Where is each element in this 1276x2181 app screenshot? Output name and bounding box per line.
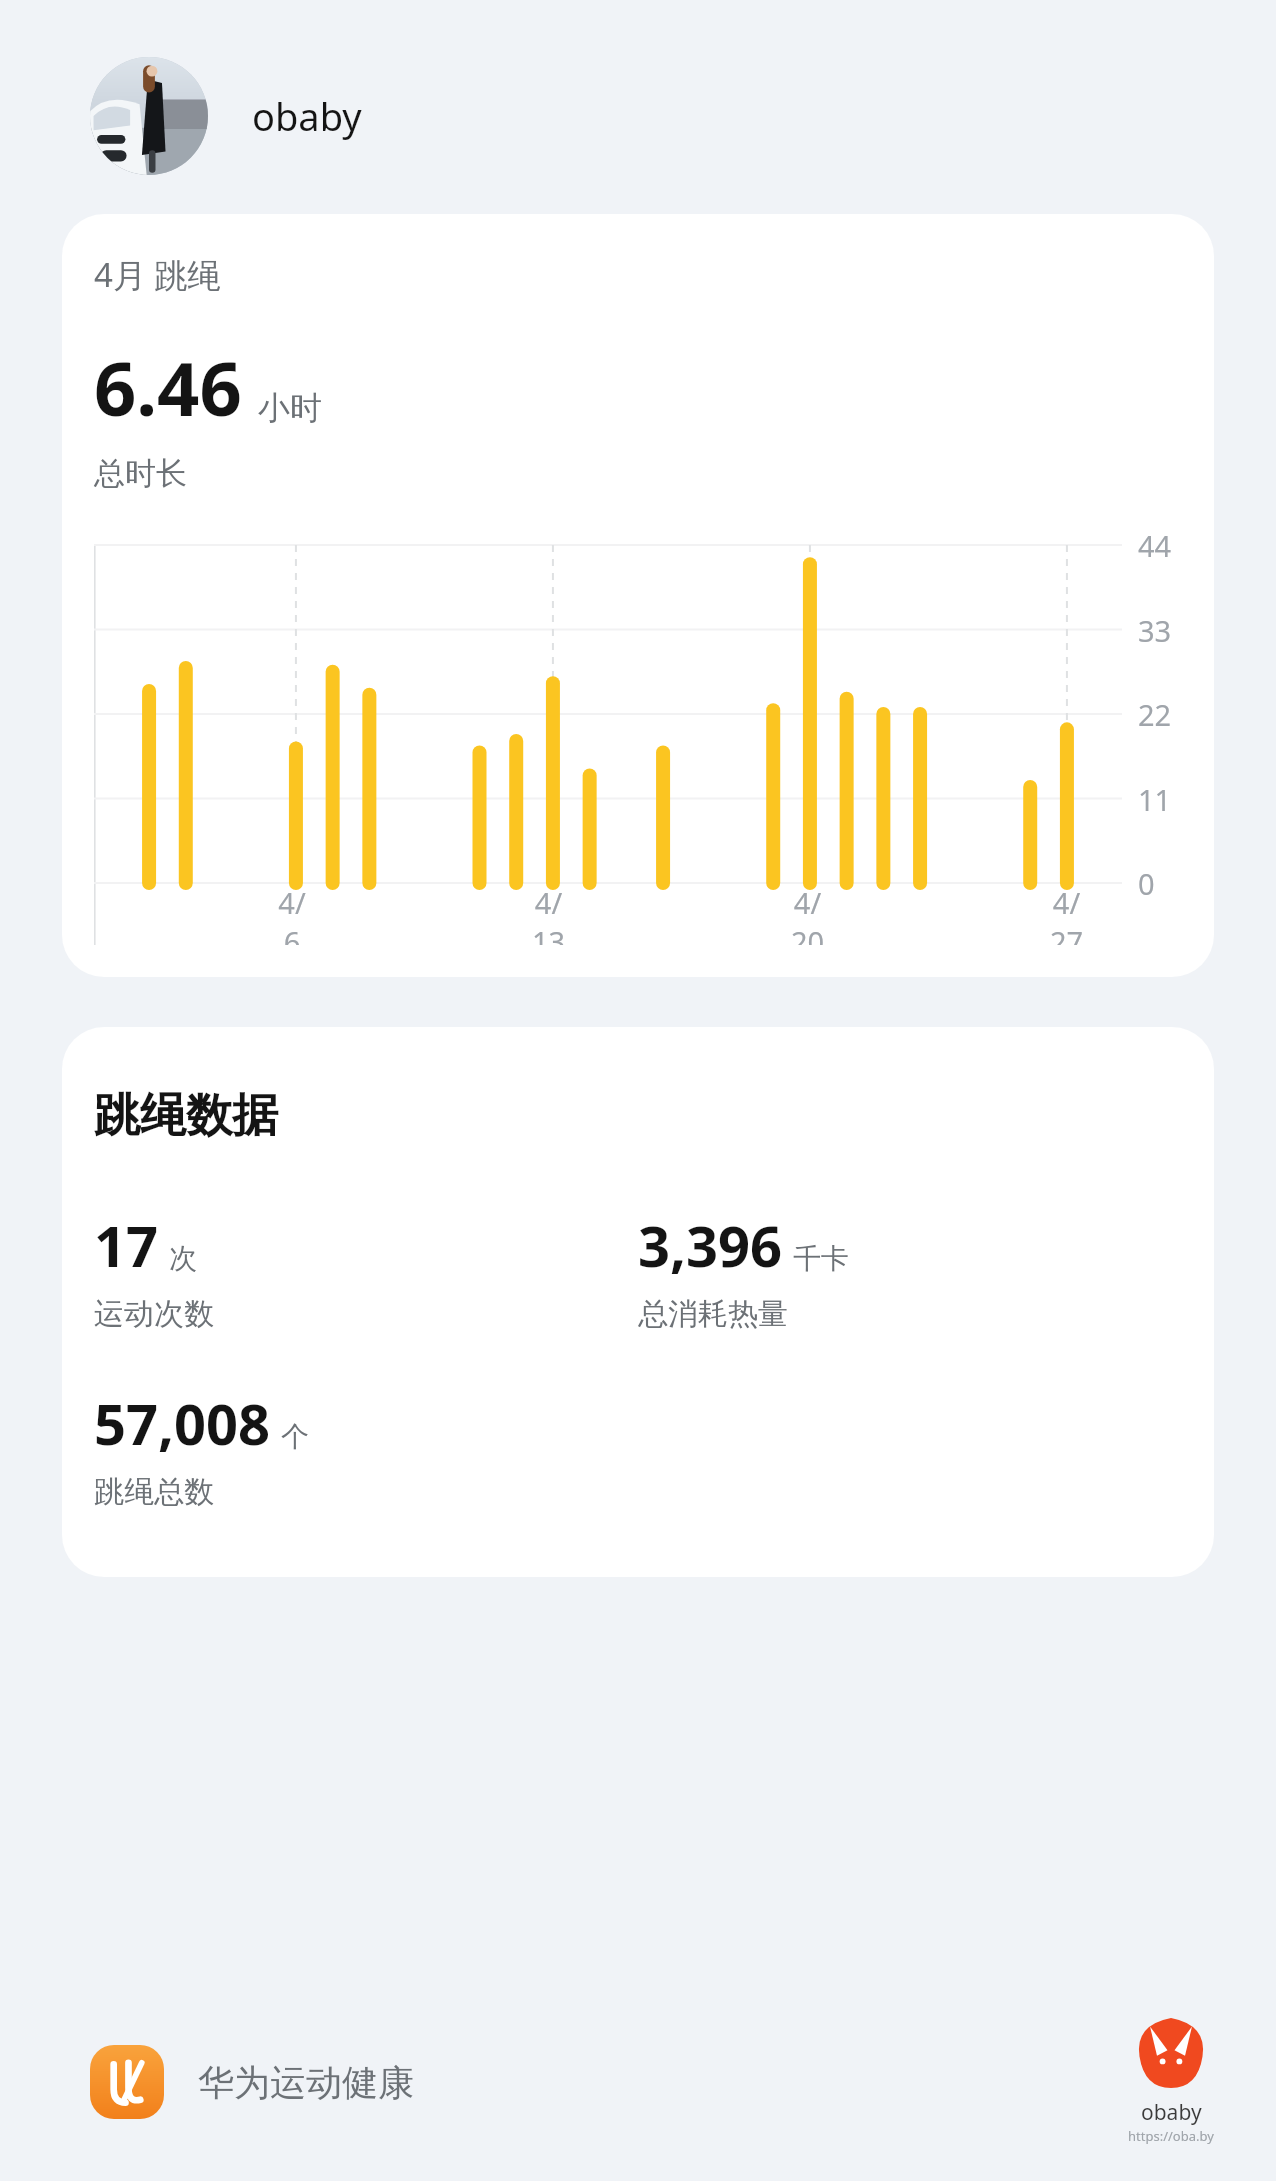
staticText: 跳绳总数 xyxy=(94,1473,214,1511)
staticText: 17 xyxy=(94,1207,159,1283)
staticText: 总消耗热量 xyxy=(638,1295,788,1333)
button[interactable]: 华为运动健康 xyxy=(90,2045,414,2119)
button[interactable]: 跳绳数据 xyxy=(62,1027,1214,1577)
staticText: 57,008 xyxy=(94,1385,271,1461)
staticText: 11 xyxy=(1138,780,1172,819)
staticText: 4/27 xyxy=(1048,883,1085,945)
staticText: 4月 跳绳 xyxy=(94,252,221,297)
staticText: 个 xyxy=(281,1419,309,1454)
staticText: 0 xyxy=(1138,864,1155,903)
staticText: 3,396 xyxy=(638,1207,783,1283)
staticText: 4/6 xyxy=(274,883,310,945)
staticText: obaby xyxy=(252,90,362,142)
staticText: 4/20 xyxy=(789,883,826,945)
staticText: 小时 xyxy=(258,388,322,428)
staticText: 次 xyxy=(169,1241,197,1276)
staticText: 44 xyxy=(1138,526,1172,565)
staticText: 4/13 xyxy=(530,883,567,945)
other: 华为运动健康 xyxy=(90,2045,164,2119)
staticText: obaby xyxy=(1141,2098,1202,2127)
button[interactable]: obaby xyxy=(90,57,1276,175)
staticText: 华为运动健康 xyxy=(198,2060,414,2105)
staticText: 总时长 xyxy=(94,454,187,493)
staticText: 运动次数 xyxy=(94,1295,214,1333)
button[interactable]: 4月 跳绳 xyxy=(62,214,1214,977)
staticText: 33 xyxy=(1138,611,1172,650)
staticText: 22 xyxy=(1138,695,1172,734)
staticText: 千卡 xyxy=(793,1241,849,1276)
staticText: https://oba.by xyxy=(1128,2127,1214,2145)
staticText: 跳绳数据 xyxy=(94,1087,278,1145)
staticText: 6.46 xyxy=(94,337,242,438)
button[interactable]: obaby site xyxy=(1128,2018,1214,2145)
